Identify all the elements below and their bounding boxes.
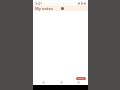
button[interactable]: Profile (71, 79, 85, 85)
staticText: 9:41 (35, 1, 42, 6)
button[interactable]: New note (76, 77, 86, 80)
button[interactable]: Search (54, 79, 68, 85)
staticText: My notes (35, 6, 53, 11)
button[interactable]: Account (61, 7, 64, 10)
button[interactable]: My notes (33, 6, 88, 11)
button[interactable]: Home (36, 79, 50, 85)
